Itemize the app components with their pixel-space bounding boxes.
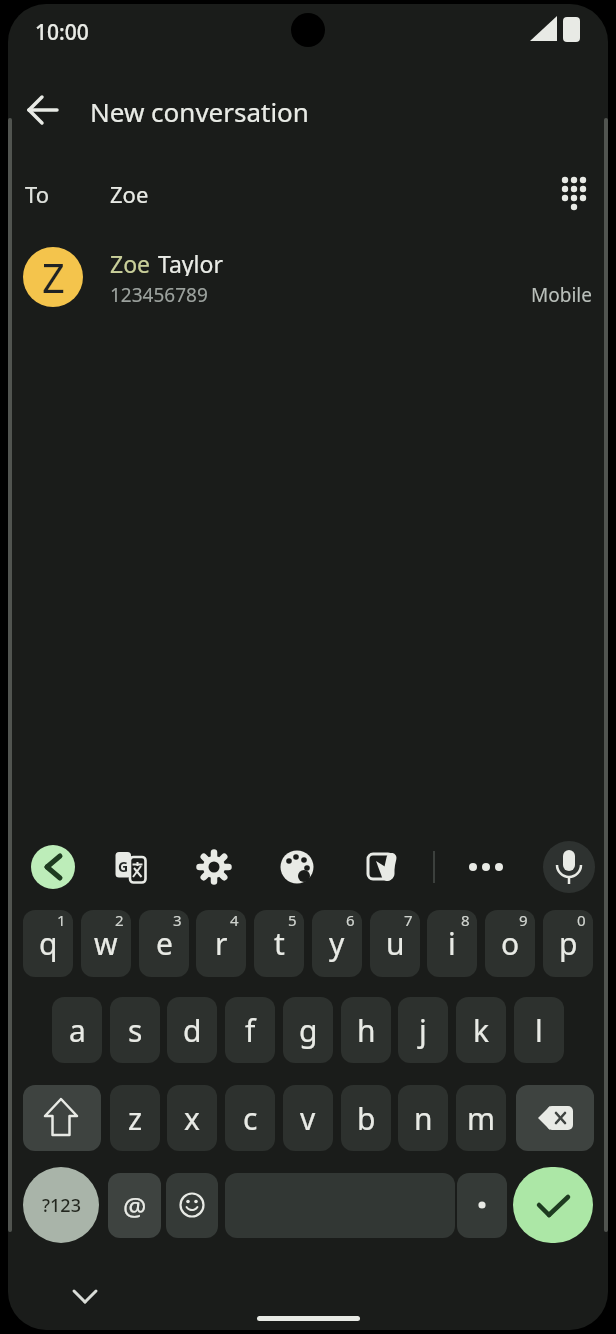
button[interactable]: b bbox=[341, 1085, 391, 1151]
button[interactable] bbox=[513, 1167, 593, 1243]
button[interactable]: ?123 bbox=[23, 1167, 99, 1243]
button[interactable]: n bbox=[398, 1085, 448, 1151]
button[interactable] bbox=[464, 845, 508, 889]
button[interactable]: i bbox=[427, 910, 477, 977]
staticText: 6 bbox=[346, 910, 355, 930]
staticText: 5 bbox=[288, 910, 297, 930]
button[interactable]: t bbox=[254, 910, 304, 977]
staticText: G bbox=[118, 857, 129, 873]
button[interactable]: x bbox=[167, 1085, 217, 1151]
button[interactable] bbox=[166, 1173, 218, 1238]
button[interactable]: y bbox=[312, 910, 362, 977]
staticText: Zoe bbox=[110, 179, 149, 207]
staticText: l bbox=[535, 1010, 543, 1051]
staticText: v bbox=[300, 1098, 316, 1139]
button[interactable]: c bbox=[225, 1085, 275, 1151]
button[interactable] bbox=[359, 845, 403, 889]
staticText: e bbox=[156, 923, 173, 964]
staticText: y bbox=[329, 923, 345, 964]
button[interactable]: r bbox=[196, 910, 246, 977]
staticText: t bbox=[274, 923, 285, 964]
staticText: 0 bbox=[577, 910, 586, 930]
staticText: h bbox=[357, 1010, 376, 1051]
button[interactable]: k bbox=[456, 997, 506, 1063]
button[interactable]: j bbox=[398, 997, 448, 1063]
button[interactable] bbox=[31, 845, 75, 889]
button[interactable]: q bbox=[23, 910, 73, 977]
staticText: g bbox=[299, 1010, 318, 1051]
button[interactable]: d bbox=[167, 997, 217, 1063]
staticText: r bbox=[215, 923, 228, 964]
button[interactable] bbox=[192, 845, 236, 889]
staticText: c bbox=[243, 1098, 258, 1139]
button[interactable]: l bbox=[514, 997, 564, 1063]
staticText: b bbox=[357, 1098, 376, 1139]
button[interactable]: m bbox=[456, 1085, 506, 1151]
staticText: q bbox=[39, 923, 58, 964]
staticText: 9 bbox=[519, 910, 528, 930]
staticText: Taylor bbox=[158, 248, 223, 276]
staticText: 3 bbox=[173, 910, 182, 930]
staticText: Mobile bbox=[531, 282, 592, 306]
button[interactable]: a bbox=[52, 997, 102, 1063]
staticText: 2 bbox=[115, 910, 124, 930]
staticText: z bbox=[128, 1098, 143, 1139]
button[interactable] bbox=[457, 1173, 507, 1238]
button[interactable]: o bbox=[485, 910, 535, 977]
button[interactable]: h bbox=[341, 997, 391, 1063]
button[interactable]: e bbox=[139, 910, 189, 977]
staticText: o bbox=[501, 923, 520, 964]
staticText: @ bbox=[123, 1188, 147, 1223]
staticText: x bbox=[184, 1098, 200, 1139]
staticText: 123456789 bbox=[110, 282, 208, 306]
staticText: Zoe bbox=[110, 248, 151, 276]
staticText: u bbox=[386, 923, 405, 964]
staticText: i bbox=[448, 923, 456, 964]
button[interactable] bbox=[109, 845, 153, 889]
button[interactable]: w bbox=[81, 910, 131, 977]
staticText: Z bbox=[42, 250, 65, 304]
staticText: a bbox=[69, 1010, 86, 1051]
button[interactable]: g bbox=[283, 997, 333, 1063]
staticText: m bbox=[467, 1098, 496, 1139]
staticText: w bbox=[94, 923, 118, 964]
button[interactable]: @ bbox=[108, 1173, 161, 1238]
staticText: ?123 bbox=[42, 1193, 81, 1218]
staticText: n bbox=[414, 1098, 433, 1139]
staticText: j bbox=[419, 1010, 427, 1051]
button[interactable] bbox=[275, 845, 319, 889]
staticText: d bbox=[183, 1010, 202, 1051]
staticText: 7 bbox=[404, 910, 413, 930]
staticText: 1 bbox=[57, 910, 66, 930]
staticText: f bbox=[245, 1010, 256, 1051]
button[interactable]: u bbox=[370, 910, 420, 977]
button[interactable]: p bbox=[543, 910, 593, 977]
staticText: 4 bbox=[230, 910, 239, 930]
button[interactable]: v bbox=[283, 1085, 333, 1151]
staticText: New conversation bbox=[90, 94, 309, 126]
button[interactable]: f bbox=[225, 997, 275, 1063]
staticText: 10:00 bbox=[35, 18, 89, 44]
button[interactable] bbox=[543, 841, 595, 893]
staticText: s bbox=[128, 1010, 143, 1051]
button[interactable] bbox=[0, 240, 616, 316]
staticText: k bbox=[473, 1010, 490, 1051]
button[interactable]: s bbox=[110, 997, 160, 1063]
staticText: p bbox=[559, 923, 578, 964]
button[interactable] bbox=[516, 1085, 594, 1151]
staticText: To bbox=[25, 179, 50, 207]
button[interactable] bbox=[23, 1085, 101, 1151]
button[interactable] bbox=[548, 167, 600, 219]
button[interactable]: z bbox=[110, 1085, 160, 1151]
staticText: 8 bbox=[461, 910, 470, 930]
